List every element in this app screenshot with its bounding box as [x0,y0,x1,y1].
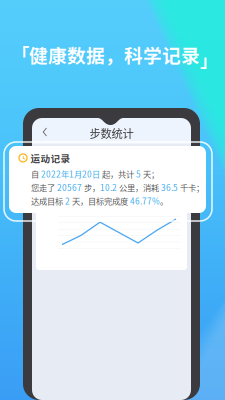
button[interactable]: Back [32,123,52,139]
staticText: 「 [12,41,29,66]
staticText: 千卡； [178,181,204,193]
staticText: 5 [136,168,141,180]
staticText: 天； [141,168,159,180]
staticText: 20567 [57,181,82,193]
staticText: 36.5 [161,181,178,193]
staticText: 自 [31,168,41,180]
staticText: 。 [160,195,168,207]
staticText: 运动记录 [30,151,70,165]
staticText: 」 [200,47,217,72]
staticText: 10.2 [100,181,117,193]
staticText: 2 [65,195,70,207]
staticText: 2022年1月20日 [41,168,100,180]
staticText: 近七天步数 [52,188,92,200]
staticText: 达成目标 [31,195,65,207]
staticText: 公里，消耗 [117,181,161,193]
staticText: 健康数据，科学记录 [29,41,200,68]
staticText: 起，共计 [100,168,136,180]
staticText: 天，目标完成度 [70,195,130,207]
staticText: 46.77% [130,195,160,207]
staticText: 步， [82,181,100,193]
staticText: 步数统计 [89,125,133,141]
staticText: 您走了 [31,181,57,193]
